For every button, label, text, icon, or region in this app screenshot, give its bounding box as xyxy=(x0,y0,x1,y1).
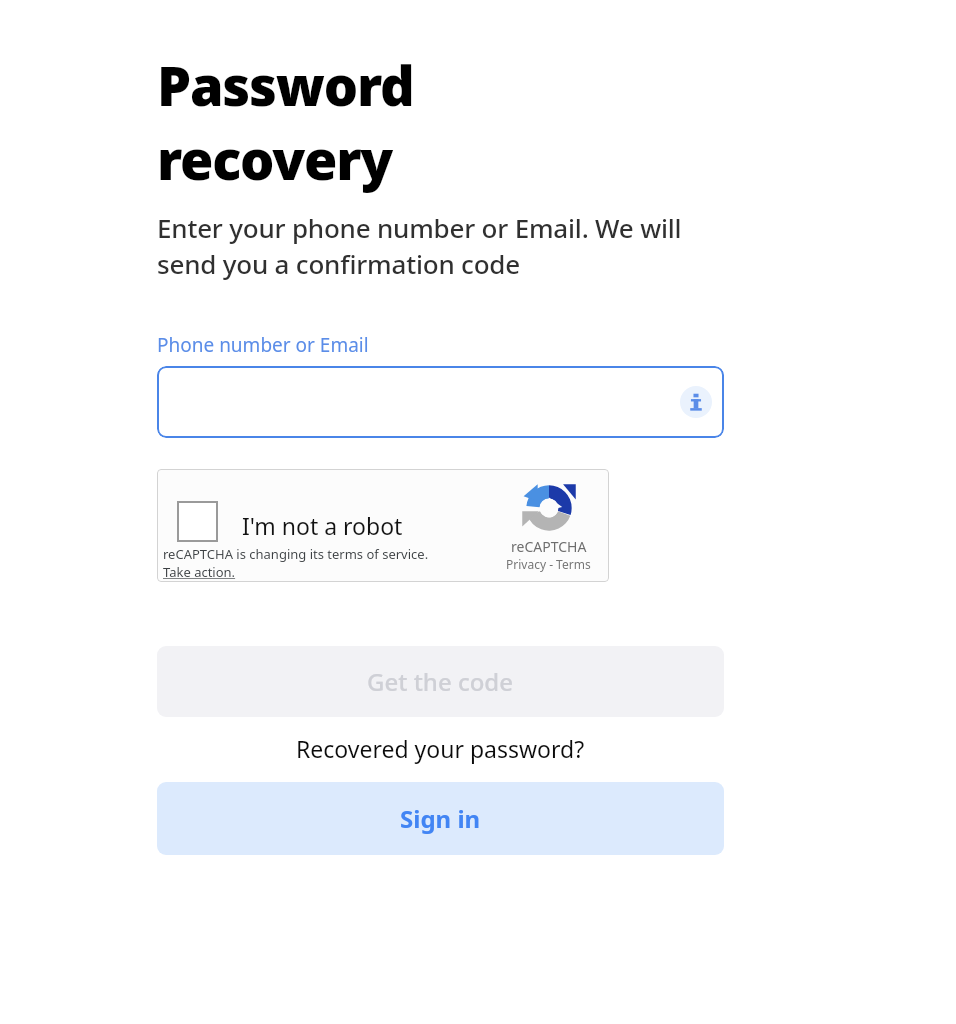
staticText: Privacy - Terms xyxy=(506,556,591,572)
button[interactable]: Information xyxy=(680,386,712,418)
staticText: Password xyxy=(157,48,414,122)
staticText: recovery xyxy=(157,122,393,196)
staticText: Sign in xyxy=(400,802,481,835)
button[interactable]: Get the code xyxy=(157,646,724,717)
button[interactable]: Information xyxy=(157,366,724,438)
button[interactable]: Take action. xyxy=(163,563,236,581)
staticText: reCAPTCHA xyxy=(511,537,587,556)
staticText: Get the code xyxy=(367,665,514,698)
button[interactable]: I'm not a robot checkbox xyxy=(177,501,218,542)
staticText: Phone number or Email xyxy=(157,332,369,358)
staticText: Recovered your password? xyxy=(296,733,585,764)
staticText: reCAPTCHA is changing its terms of servi… xyxy=(163,545,429,563)
staticText: I'm not a robot xyxy=(242,510,403,541)
staticText: Enter your phone number or Email. We wil… xyxy=(157,210,717,282)
button[interactable]: Sign in xyxy=(157,782,724,855)
